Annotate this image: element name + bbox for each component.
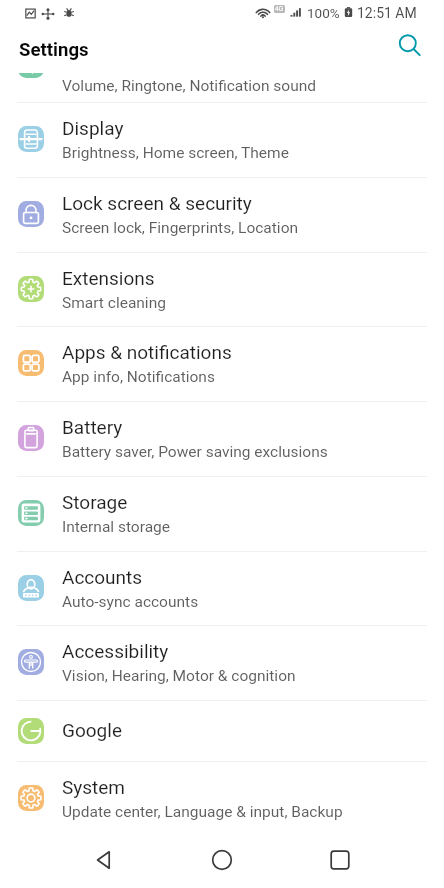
staticText: App info, Notifications: [62, 368, 215, 386]
staticText: Smart cleaning: [62, 294, 166, 312]
staticText: Vision, Hearing, Motor & cognition: [62, 667, 296, 685]
button[interactable]: Storage: [0, 476, 444, 551]
staticText: Brightness, Home screen, Theme: [62, 144, 289, 162]
staticText: Settings: [19, 39, 89, 61]
staticText: Storage: [62, 491, 128, 513]
staticText: Extensions: [62, 267, 155, 289]
staticText: 100%: [307, 5, 340, 21]
button[interactable]: Battery: [0, 401, 444, 476]
button[interactable]: Accounts: [0, 551, 444, 626]
button[interactable]: Display: [0, 102, 444, 177]
staticText: Display: [62, 117, 124, 139]
staticText: 12:51 AM: [357, 5, 417, 21]
button[interactable]: System: [0, 761, 444, 836]
staticText: Screen lock, Fingerprints, Location: [62, 219, 299, 237]
button[interactable]: Back: [82, 838, 126, 882]
button[interactable]: Google: [0, 700, 444, 761]
staticText: Battery saver, Power saving exclusions: [62, 443, 328, 461]
button[interactable]: Apps & notifications: [0, 326, 444, 401]
staticText: Accessibility: [62, 640, 169, 662]
staticText: Google: [62, 719, 122, 741]
button[interactable]: Accessibility: [0, 625, 444, 700]
staticText: Auto-sync accounts: [62, 593, 199, 611]
button[interactable]: Search: [392, 29, 428, 65]
button[interactable]: Recents: [318, 838, 362, 882]
staticText: Battery: [62, 416, 123, 438]
staticText: 4G: [275, 5, 284, 13]
button[interactable]: Home: [200, 838, 244, 882]
button[interactable]: Lock screen & security: [0, 177, 444, 252]
staticText: System: [62, 776, 126, 798]
staticText: Update center, Language & input, Backup: [62, 803, 343, 821]
button[interactable]: Extensions: [0, 252, 444, 327]
staticText: Internal storage: [62, 518, 170, 536]
staticText: Accounts: [62, 566, 143, 588]
staticText: Apps & notifications: [62, 341, 232, 363]
staticText: Lock screen & security: [62, 192, 252, 214]
staticText: Volume, Ringtone, Notification sound: [62, 77, 317, 95]
